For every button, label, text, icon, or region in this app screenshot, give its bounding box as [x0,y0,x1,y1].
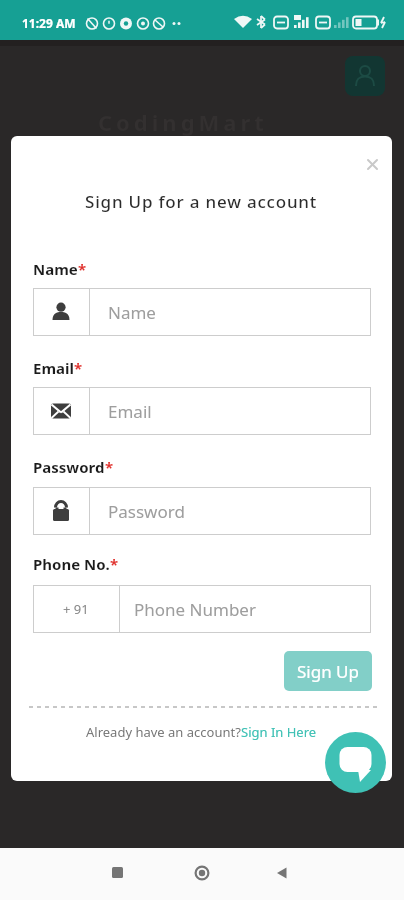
button[interactable] [345,56,385,96]
staticText: * [74,358,83,378]
button[interactable] [325,732,386,793]
staticText: + 91 [63,600,89,618]
button[interactable] [361,153,383,175]
button[interactable]: + 91 [33,585,371,633]
staticText: Already have an account? [86,723,241,741]
staticText: Password [33,457,105,477]
staticText: CodingMart [98,107,268,137]
staticText: Name [33,259,78,279]
staticText: Email [108,400,152,423]
staticText: Sign Up for a new account [85,190,318,213]
staticText: 11:29 AM [22,15,76,31]
button[interactable] [112,867,123,878]
staticText: Sign Up [297,660,359,683]
staticText: Email [33,358,74,378]
button[interactable] [276,867,288,879]
staticText: * [78,259,87,279]
staticText: Phone Number [134,598,256,621]
staticText: Phone No. [33,554,110,574]
button[interactable] [194,865,210,881]
button[interactable]: Sign Up [284,651,372,691]
button[interactable]: Password [33,487,371,535]
button[interactable]: Sign In Here [241,723,317,741]
button[interactable]: Email [33,387,371,435]
staticText: Password [108,500,185,523]
staticText: * [110,554,119,574]
staticText: Name [108,301,156,324]
button[interactable]: Name [33,288,371,336]
staticText: * [105,457,114,477]
